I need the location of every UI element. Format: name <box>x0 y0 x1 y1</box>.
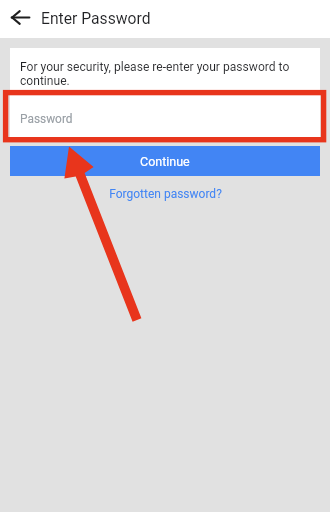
staticText: Enter Password <box>41 9 151 27</box>
staticText: Password <box>20 112 73 126</box>
button[interactable]: Back <box>0 0 41 38</box>
staticText: For your security, please re-enter your … <box>20 60 298 88</box>
button[interactable]: Forgotten password? <box>101 185 230 203</box>
staticText: Continue <box>140 154 190 169</box>
button[interactable]: Password <box>10 96 320 137</box>
staticText: Forgotten password? <box>109 187 222 201</box>
button[interactable]: Continue <box>10 146 320 176</box>
